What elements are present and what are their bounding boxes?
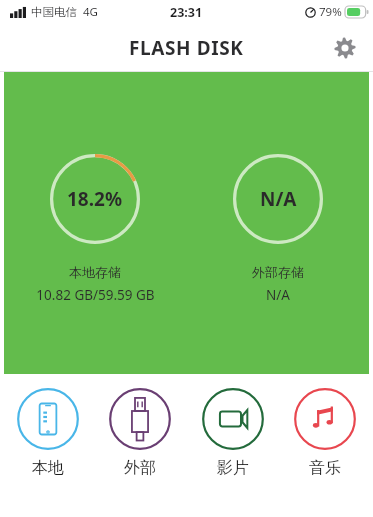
staticText: 中国电信	[31, 5, 77, 19]
button[interactable]: 影片	[188, 388, 278, 478]
staticText: 音乐	[309, 458, 341, 478]
staticText: N/A	[260, 186, 297, 212]
staticText: 79%	[319, 4, 342, 20]
staticText: 外部存储	[252, 264, 304, 280]
staticText: N/A	[266, 286, 290, 304]
staticText: 10.82 GB/59.59 GB	[36, 286, 155, 304]
staticText: 4G	[83, 4, 98, 20]
staticText: 本地存储	[69, 264, 121, 280]
button[interactable]: 音乐	[280, 388, 370, 478]
button[interactable]: Settings	[325, 28, 365, 68]
staticText: FLASH DISK	[129, 35, 244, 61]
staticText: 影片	[217, 458, 249, 478]
button[interactable]: 本地	[3, 388, 93, 478]
staticText: 外部	[124, 458, 156, 478]
staticText: 本地	[32, 458, 64, 478]
staticText: 18.2%	[67, 186, 123, 212]
button[interactable]: 外部	[95, 388, 185, 478]
staticText: 23:31	[170, 4, 203, 21]
